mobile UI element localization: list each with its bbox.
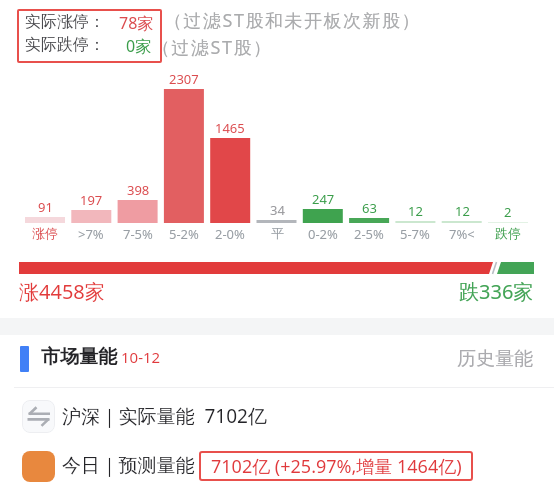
staticText: 247	[312, 190, 335, 208]
staticText: 市场量能	[41, 345, 117, 369]
staticText: 10-12	[121, 347, 161, 367]
staticText: 1465	[215, 119, 245, 137]
staticText: 0-2%	[308, 225, 338, 243]
staticText: 实际跌停：	[25, 35, 105, 55]
button[interactable]: 实际涨停：	[17, 9, 162, 63]
staticText: 2-0%	[215, 225, 245, 243]
button[interactable]: 历史量能	[384, 346, 533, 372]
staticText: （过滤ST股）	[152, 35, 273, 60]
staticText: 197	[80, 191, 103, 209]
staticText: 91	[38, 198, 53, 216]
staticText: 跌336家	[459, 278, 534, 305]
staticText: 7%<	[449, 225, 475, 243]
staticText: 2	[504, 203, 512, 221]
button[interactable]: 7102亿 (+25.97%,增量 1464亿)	[199, 451, 473, 481]
staticText: 12	[408, 202, 423, 220]
staticText: 63	[362, 199, 377, 217]
staticText: 实际涨停：	[25, 12, 105, 32]
staticText: （过滤ST股和未开板次新股）	[164, 8, 421, 33]
staticText: 398	[127, 181, 150, 199]
staticText: 沪深｜实际量能 7102亿	[62, 403, 267, 429]
button[interactable]: 沪深｜实际量能 7102亿	[22, 398, 554, 434]
staticText: 2307	[169, 70, 199, 88]
staticText: 今日｜预测量能	[62, 454, 195, 478]
staticText: 2-5%	[354, 225, 384, 243]
staticText: 历史量能	[457, 347, 533, 371]
staticText: 78家	[119, 12, 154, 34]
staticText: 0家	[126, 35, 152, 57]
staticText: 12	[455, 202, 470, 220]
staticText: 平	[271, 225, 284, 241]
staticText: 涨4458家	[19, 278, 105, 305]
staticText: 5-7%	[400, 225, 430, 243]
button[interactable]: 今日｜预测量能	[22, 448, 554, 482]
staticText: >7%	[78, 225, 104, 243]
staticText: 34	[270, 201, 285, 219]
staticText: 5-2%	[169, 225, 199, 243]
button[interactable]: 市场量能	[41, 344, 161, 370]
staticText: 涨停	[32, 225, 58, 241]
staticText: 7-5%	[123, 225, 153, 243]
staticText: 7102亿 (+25.97%,增量 1464亿)	[211, 454, 462, 479]
staticText: 跌停	[495, 225, 521, 241]
